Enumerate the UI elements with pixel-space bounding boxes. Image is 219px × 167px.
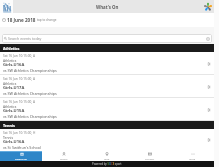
other: Open fixture bbox=[207, 108, 211, 112]
button[interactable]: Sat 16 Jun 10:15:00, A bbox=[0, 98, 214, 121]
staticText: Sat 16 Jun 10:15:00, H bbox=[3, 131, 36, 135]
staticText: vs SW Athletics Championships bbox=[3, 91, 57, 96]
staticText: vs St Swithun's School bbox=[3, 145, 41, 150]
staticText: Tennis bbox=[3, 135, 13, 139]
other: Open fixture bbox=[207, 85, 211, 89]
staticText: Girls-U16A bbox=[3, 62, 25, 68]
button[interactable]: Search events today bbox=[2, 34, 212, 43]
staticText: Sports bbox=[60, 157, 68, 160]
button[interactable]: Sat 16 Jun 10:15:00, H bbox=[0, 129, 214, 151]
button[interactable]: More bbox=[171, 151, 214, 161]
button[interactable]: Sat 16 Jun 10:15:00, A bbox=[0, 52, 214, 75]
staticText: Powered by SOCS sport bbox=[92, 162, 122, 166]
staticText: Sat 16 Jun 10:15:00, A bbox=[3, 77, 35, 81]
staticText: Sat 16 Jun 10:15:00, A bbox=[3, 54, 35, 58]
staticText: Athletics bbox=[3, 81, 17, 85]
staticText: tap to change bbox=[37, 18, 57, 22]
staticText: Girls-U17A bbox=[3, 85, 25, 91]
button[interactable]: What's On bbox=[0, 151, 42, 161]
staticText: What's On bbox=[96, 4, 119, 10]
button[interactable]: School crest bbox=[0, 0, 13, 13]
staticText: Girls-U15A bbox=[3, 108, 25, 114]
staticText: Map bbox=[104, 157, 110, 160]
other: Open fixture bbox=[207, 62, 211, 66]
button[interactable]: 18 June 2018 bbox=[0, 13, 214, 27]
button[interactable]: Sat 16 Jun 10:15:00, A bbox=[0, 75, 214, 98]
button[interactable]: Sports bbox=[42, 151, 85, 161]
staticText: Search events today bbox=[8, 36, 42, 41]
staticText: Athletics bbox=[3, 58, 17, 62]
staticText: Tennis bbox=[3, 123, 15, 128]
button[interactable]: Contact bbox=[128, 151, 171, 161]
staticText: vs SW Athletics Championships bbox=[3, 68, 57, 73]
staticText: vs SW Athletics Championships bbox=[3, 114, 57, 119]
staticText: Sat 16 Jun 10:15:00, A bbox=[3, 100, 35, 104]
staticText: Girls-U16A bbox=[3, 139, 25, 145]
staticText: What's On bbox=[15, 157, 28, 160]
button[interactable]: Map bbox=[85, 151, 128, 161]
staticText: 18 June 2018 bbox=[7, 17, 36, 23]
staticText: More bbox=[189, 157, 196, 160]
staticText: Athletics bbox=[3, 104, 17, 108]
button[interactable]: Apps bbox=[203, 2, 213, 12]
staticText: Athletics bbox=[3, 46, 20, 51]
staticText: Contact bbox=[145, 157, 155, 160]
button[interactable]: Clear search bbox=[206, 37, 210, 41]
other: Open fixture bbox=[207, 138, 211, 142]
